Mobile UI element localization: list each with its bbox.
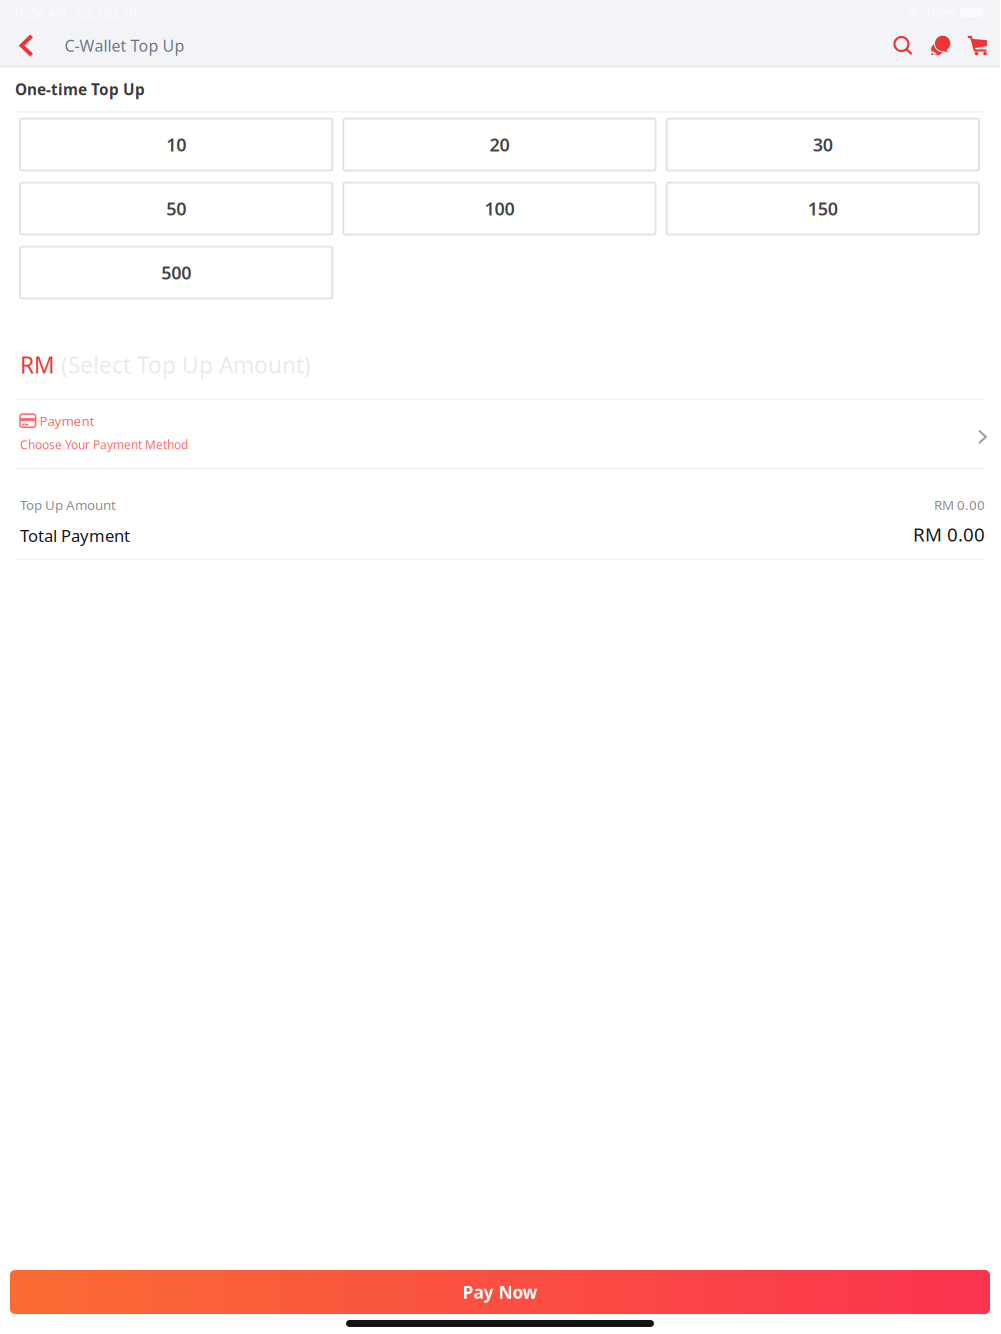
staticText: 500 <box>161 261 191 284</box>
staticText: (Select Top Up Amount) <box>55 350 311 380</box>
button[interactable]: 150 <box>667 183 979 235</box>
button[interactable]: Search <box>884 25 922 66</box>
button[interactable]: 30 <box>667 119 979 171</box>
staticText: 30 <box>813 133 833 156</box>
button[interactable]: Pay Now <box>10 1270 990 1314</box>
staticText: Total Payment <box>20 524 130 546</box>
staticText: Top Up Amount <box>20 496 116 514</box>
staticText: Pay Now <box>462 1280 537 1303</box>
button[interactable]: Shopping cart <box>959 25 996 66</box>
staticText: RM 0.00 <box>934 496 985 514</box>
staticText: 50 <box>166 197 186 220</box>
staticText: 150 <box>808 197 838 220</box>
button[interactable]: Messages <box>922 25 959 66</box>
staticText: C-Wallet Top Up <box>65 35 185 56</box>
button[interactable]: 50 <box>20 183 332 235</box>
button[interactable]: 20 <box>343 119 656 171</box>
staticText: Choose Your Payment Method <box>20 437 188 452</box>
button[interactable]: Payment <box>0 400 1000 468</box>
staticText: One-time Top Up <box>15 79 145 99</box>
staticText: 20 <box>489 133 509 156</box>
button[interactable]: Back <box>7 25 47 66</box>
staticText: RM 0.00 <box>913 522 985 547</box>
button[interactable]: 10 <box>20 119 332 171</box>
staticText: Payment <box>40 412 95 430</box>
staticText: 10 <box>166 133 186 156</box>
staticText: 100 <box>484 197 514 220</box>
button[interactable]: 100 <box>343 183 656 235</box>
staticText: RM <box>20 350 55 380</box>
button[interactable]: 500 <box>20 247 332 299</box>
